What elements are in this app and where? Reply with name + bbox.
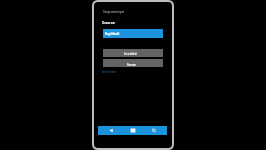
button[interactable]: Search <box>147 126 161 135</box>
staticText: learn more <box>102 69 116 74</box>
button[interactable]: Back <box>104 126 118 135</box>
staticText: Change search engine <box>103 9 124 14</box>
staticText: Choose one <box>102 20 115 25</box>
staticText: Set as default <box>124 51 137 56</box>
button[interactable] <box>103 59 163 67</box>
button[interactable] <box>103 49 163 57</box>
staticText: Remove <box>127 62 136 67</box>
button[interactable]: Start <box>126 126 140 135</box>
button[interactable] <box>103 29 163 38</box>
staticText: Bing (default) <box>105 31 119 36</box>
